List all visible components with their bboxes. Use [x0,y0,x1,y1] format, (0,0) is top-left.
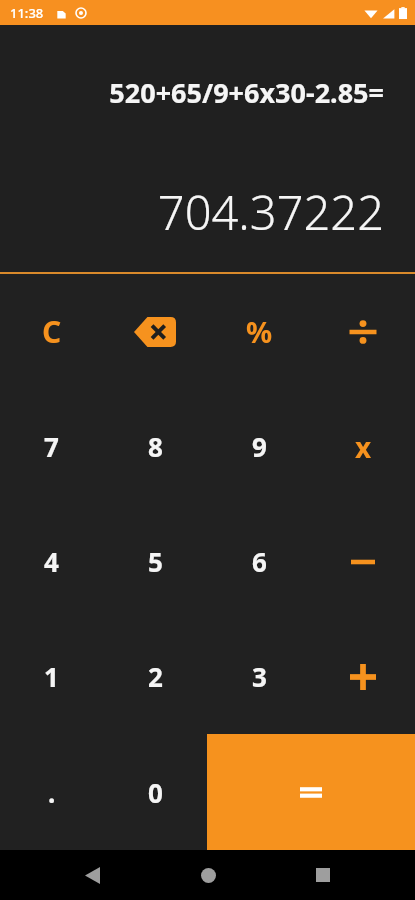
staticText: 2 [148,659,163,694]
button[interactable]: 4 [0,504,103,619]
staticText: 5 [148,544,163,579]
button[interactable]: Percent [207,274,311,389]
staticText: 8 [148,429,163,464]
button[interactable]: 0 [103,734,207,850]
staticText: 4 [44,544,59,579]
button[interactable]: Clear [0,274,103,389]
button[interactable]: 9 [207,389,311,504]
staticText: x [355,428,372,466]
staticText: % [246,312,273,351]
button[interactable]: Back [68,851,116,899]
button[interactable]: Home [184,851,232,899]
button[interactable]: Backspace [103,274,207,389]
staticText: . [48,775,56,810]
button[interactable]: 3 [207,619,311,734]
staticText: 9 [252,429,267,464]
button[interactable]: 5 [103,504,207,619]
staticText: C [42,311,62,352]
staticText: 0 [148,775,163,810]
button[interactable]: Recent apps [299,851,347,899]
staticText: 11:38 [10,4,44,22]
button[interactable]: Equals [207,734,415,850]
staticText: 704.37222 [157,180,384,244]
staticText: 7 [44,429,59,464]
staticText: 3 [252,659,267,694]
staticText: 1 [44,659,59,694]
button[interactable]: Multiply [311,389,415,504]
button[interactable]: Minus [311,504,415,619]
button[interactable]: Plus [311,619,415,734]
button[interactable]: 1 [0,619,103,734]
button[interactable]: 7 [0,389,103,504]
button[interactable]: 8 [103,389,207,504]
button[interactable]: 6 [207,504,311,619]
staticText: 520+65/9+6x30-2.85= [109,74,384,111]
button[interactable]: Divide [311,274,415,389]
staticText: 6 [252,544,267,579]
button[interactable]: Decimal point [0,734,103,850]
button[interactable]: 2 [103,619,207,734]
